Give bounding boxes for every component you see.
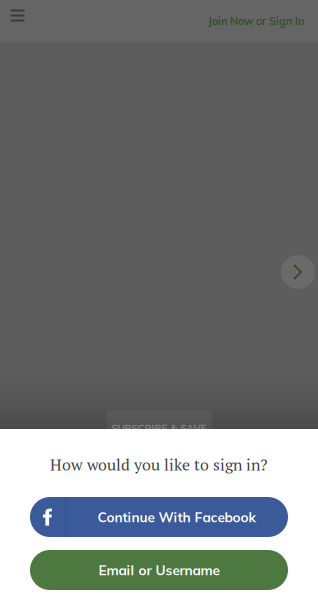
staticText: How would you like to sign in? <box>50 454 268 475</box>
button[interactable]: SUBSCRIBE & SAVE <box>106 393 211 429</box>
button[interactable]: Join Now <box>208 14 253 28</box>
staticText: or <box>256 14 266 28</box>
staticText: Email or Username <box>98 561 219 579</box>
button[interactable]: Email or Username <box>30 550 288 590</box>
button[interactable]: Menu <box>0 0 35 42</box>
button[interactable]: Sign In <box>269 14 304 28</box>
button[interactable]: Continue With Facebook <box>30 497 288 537</box>
staticText: Join Now <box>208 14 253 28</box>
button[interactable]: Next photo <box>281 255 315 289</box>
staticText: SUBSCRIBE & SAVE <box>111 422 206 434</box>
staticText: Sign In <box>269 14 304 28</box>
staticText: Continue With Facebook <box>97 508 256 526</box>
